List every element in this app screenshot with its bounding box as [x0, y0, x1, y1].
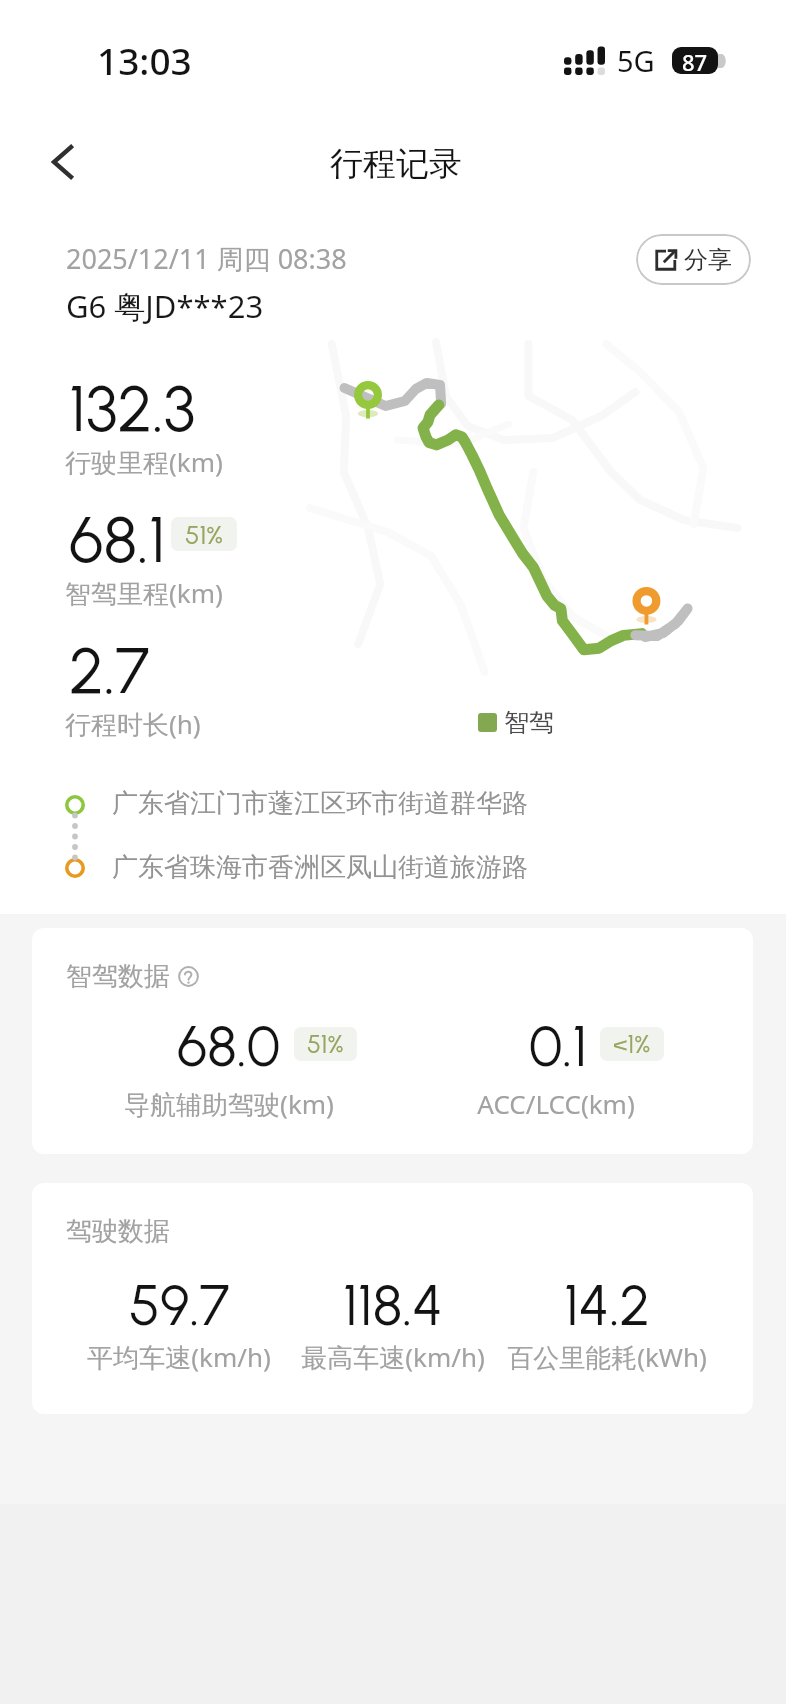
- staticText: 5G: [617, 41, 655, 80]
- staticText: 2025/12/11 周四 08:38: [66, 240, 347, 277]
- staticText: ACC/LCC(km): [477, 1086, 635, 1121]
- staticText: 132.3: [69, 370, 196, 447]
- staticText: 导航辅助驾驶(km): [124, 1086, 334, 1122]
- staticText: 最高车速(km/h): [301, 1339, 485, 1375]
- staticText: 广东省珠海市香洲区凤山街道旅游路: [112, 851, 528, 884]
- staticText: 平均车速(km/h): [87, 1339, 271, 1375]
- staticText: 广东省江门市蓬江区环市街道群华路: [112, 787, 528, 820]
- staticText: 智驾里程(km): [65, 575, 223, 611]
- staticText: 百公里能耗(kWh): [507, 1339, 707, 1375]
- staticText: G6 粤JD***23: [66, 285, 264, 327]
- staticText: 驾驶数据: [66, 1215, 170, 1248]
- staticText: 87: [682, 47, 708, 74]
- staticText: 0.1: [529, 1013, 588, 1080]
- staticText: 59.7: [129, 1272, 230, 1339]
- staticText: 51%: [185, 519, 223, 550]
- staticText: 2.7: [69, 632, 150, 709]
- staticText: 13:03: [97, 35, 192, 85]
- staticText: <1%: [613, 1029, 651, 1059]
- staticText: 行程记录: [330, 143, 462, 185]
- staticText: 68.0: [177, 1013, 281, 1080]
- staticText: 分享: [684, 245, 732, 275]
- button[interactable]: Back: [31, 131, 93, 193]
- staticText: 行驶里程(km): [65, 444, 223, 480]
- staticText: 14.2: [564, 1272, 650, 1339]
- staticText: 智驾: [504, 707, 554, 738]
- staticText: 51%: [307, 1029, 344, 1059]
- staticText: 68.1: [69, 501, 166, 578]
- button[interactable]: 分享: [636, 234, 751, 285]
- staticText: 118.4: [343, 1272, 443, 1339]
- staticText: 行程时长(h): [65, 706, 201, 742]
- staticText: 智驾数据: [66, 960, 170, 993]
